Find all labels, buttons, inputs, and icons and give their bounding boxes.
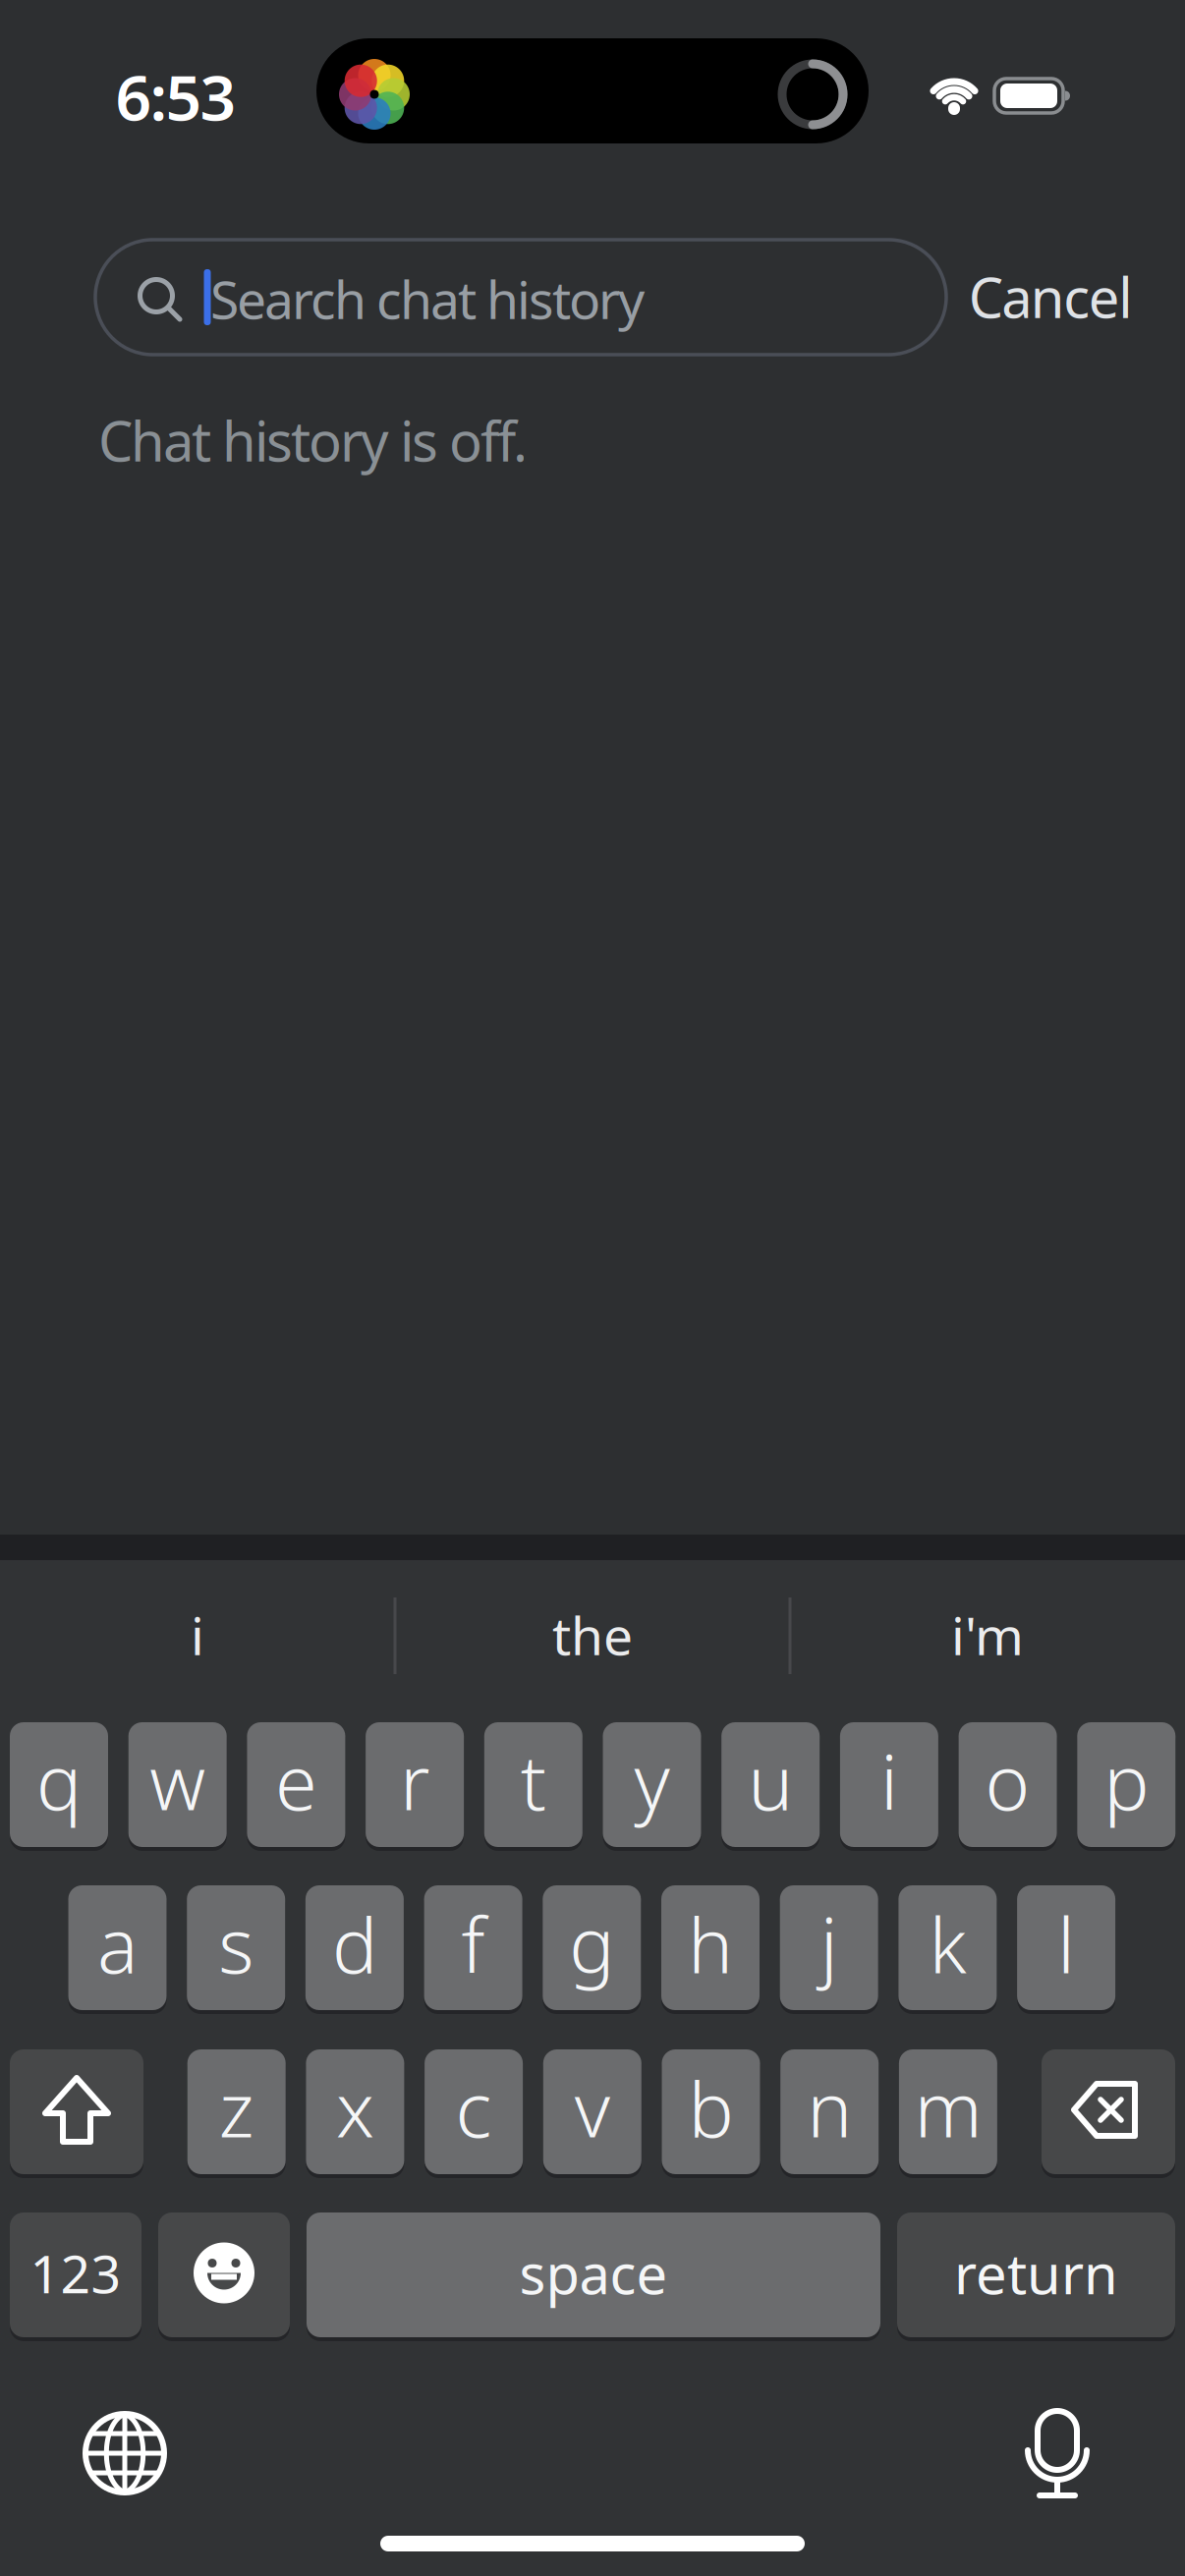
staticText: i'm <box>951 1600 1024 1670</box>
staticText: j <box>820 1893 838 1994</box>
button[interactable]: a <box>68 1883 167 2012</box>
button[interactable]: Dictation <box>998 2391 1116 2509</box>
staticText: u <box>748 1730 793 1831</box>
button[interactable]: i'm <box>796 1586 1179 1684</box>
button[interactable]: Cancel <box>969 260 1132 333</box>
staticText: z <box>219 2057 254 2158</box>
button[interactable]: x <box>306 2047 404 2176</box>
button[interactable]: Search chat history <box>95 240 946 355</box>
staticText: 123 <box>30 2238 121 2308</box>
button[interactable]: e <box>247 1720 345 1849</box>
staticText: 6:53 <box>115 55 236 138</box>
button[interactable]: q <box>10 1720 108 1849</box>
button[interactable]: Shift <box>10 2047 143 2176</box>
button[interactable]: o <box>959 1720 1057 1849</box>
button[interactable]: h <box>661 1883 760 2012</box>
staticText: space <box>519 2236 668 2309</box>
staticText: o <box>985 1730 1030 1831</box>
button[interactable]: k <box>898 1883 997 2012</box>
staticText: d <box>332 1893 377 1994</box>
staticText: v <box>575 2057 610 2158</box>
staticText: m <box>914 2057 982 2158</box>
button[interactable]: f <box>424 1883 522 2012</box>
staticText: w <box>150 1730 206 1831</box>
staticText: return <box>954 2236 1118 2309</box>
button[interactable]: g <box>543 1883 641 2012</box>
button[interactable]: d <box>305 1883 404 2012</box>
button[interactable]: b <box>662 2047 760 2176</box>
staticText: Search chat history <box>210 264 645 333</box>
staticText: r <box>400 1730 429 1831</box>
staticText: f <box>461 1893 485 1994</box>
button[interactable]: n <box>780 2047 879 2176</box>
button[interactable]: m <box>899 2047 997 2176</box>
staticText: Cancel <box>969 260 1132 333</box>
staticText: n <box>807 2057 852 2158</box>
staticText: t <box>521 1730 546 1831</box>
button[interactable]: i <box>6 1586 389 1684</box>
button[interactable]: s <box>187 1883 285 2012</box>
button[interactable]: y <box>603 1720 701 1849</box>
button[interactable]: 123 <box>10 2211 141 2339</box>
button[interactable]: Next keyboard <box>66 2394 184 2512</box>
button[interactable]: the <box>401 1586 784 1684</box>
button[interactable]: l <box>1017 1883 1115 2012</box>
staticText: the <box>552 1600 633 1670</box>
staticText: c <box>456 2057 492 2158</box>
button[interactable]: Emoji <box>158 2211 290 2339</box>
button[interactable]: p <box>1077 1720 1175 1849</box>
button[interactable]: j <box>780 1883 878 2012</box>
staticText: b <box>688 2057 734 2158</box>
button[interactable]: Delete <box>1042 2047 1175 2176</box>
button[interactable]: t <box>484 1720 582 1849</box>
staticText: e <box>275 1730 317 1831</box>
staticText: y <box>634 1730 670 1831</box>
staticText: g <box>569 1893 614 1994</box>
staticText: x <box>336 2057 374 2158</box>
staticText: a <box>97 1893 138 1994</box>
staticText: i <box>191 1600 204 1670</box>
button[interactable]: z <box>187 2047 286 2176</box>
staticText: i <box>880 1730 898 1831</box>
staticText: Chat history is off. <box>98 404 528 477</box>
button[interactable]: u <box>721 1720 820 1849</box>
staticText: k <box>929 1893 966 1994</box>
button[interactable]: i <box>840 1720 938 1849</box>
staticText: l <box>1057 1893 1075 1994</box>
button[interactable]: c <box>425 2047 523 2176</box>
button[interactable]: v <box>543 2047 641 2176</box>
staticText: s <box>218 1893 254 1994</box>
staticText: h <box>688 1893 733 1994</box>
button[interactable]: return <box>897 2211 1175 2339</box>
button[interactable]: space <box>307 2211 880 2339</box>
staticText: p <box>1104 1730 1149 1831</box>
button[interactable]: r <box>366 1720 464 1849</box>
staticText: q <box>36 1730 82 1831</box>
button[interactable]: w <box>128 1720 227 1849</box>
